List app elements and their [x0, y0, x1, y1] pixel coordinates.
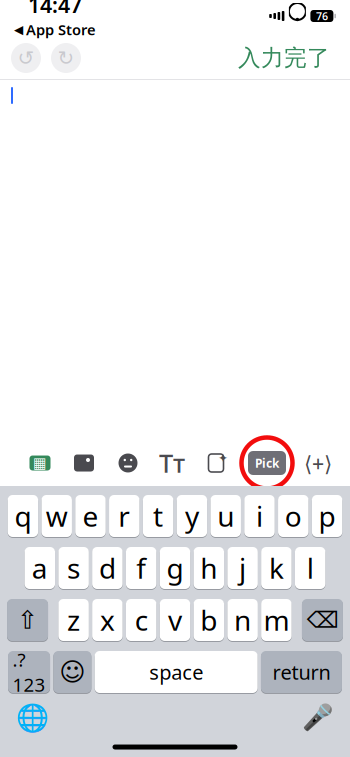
- button[interactable]: j: [227, 546, 258, 590]
- button[interactable]: Text format: [150, 443, 194, 483]
- button[interactable]: i: [244, 494, 275, 538]
- button[interactable]: 入力完了: [226, 38, 342, 78]
- staticText: 🎤: [302, 703, 334, 732]
- staticText: o: [285, 497, 302, 535]
- staticText: v: [168, 601, 182, 639]
- staticText: w: [46, 497, 68, 535]
- staticText: 76: [316, 9, 328, 23]
- staticText: 14:47: [28, 0, 82, 19]
- staticText: ✦: [218, 451, 228, 465]
- staticText: t: [153, 497, 163, 535]
- button[interactable]: b: [193, 598, 224, 642]
- staticText: 入力完了: [238, 44, 330, 72]
- staticText: 🌐: [15, 702, 48, 733]
- staticText: ▦: [33, 455, 47, 471]
- button[interactable]: m: [261, 598, 292, 642]
- staticText: u: [217, 497, 234, 535]
- button[interactable]: Keyboard: [18, 443, 62, 483]
- staticText: d: [99, 549, 116, 587]
- staticText: n: [234, 601, 251, 639]
- staticText: Pick: [255, 455, 279, 471]
- button[interactable]: z: [58, 598, 89, 642]
- staticText: ⌫: [306, 607, 338, 633]
- staticText: ⇧: [17, 606, 38, 634]
- button[interactable]: Delete: [302, 598, 343, 642]
- button[interactable]: .?123: [8, 650, 50, 694]
- staticText: ⟨+⟩: [304, 449, 332, 477]
- button[interactable]: Undo: [6, 41, 46, 75]
- button[interactable]: s: [58, 546, 89, 590]
- staticText: q: [14, 497, 31, 535]
- staticText: f: [136, 549, 146, 587]
- staticText: h: [200, 549, 217, 587]
- button[interactable]: q: [8, 494, 38, 538]
- staticText: k: [269, 549, 284, 587]
- staticText: z: [67, 601, 80, 639]
- button[interactable]: t: [143, 494, 173, 538]
- staticText: .?123: [13, 647, 46, 697]
- staticText: g: [166, 549, 183, 587]
- staticText: y: [185, 497, 199, 535]
- button[interactable]: f: [126, 546, 156, 590]
- button[interactable]: Stickers: [106, 443, 150, 483]
- button[interactable]: y: [177, 494, 207, 538]
- button[interactable]: Redo: [46, 41, 86, 75]
- button[interactable]: ◀: [14, 20, 96, 39]
- staticText: ↺: [17, 47, 34, 69]
- button[interactable]: Pick: [248, 451, 286, 475]
- staticText: s: [67, 549, 80, 587]
- button[interactable]: k: [261, 546, 292, 590]
- button[interactable]: n: [227, 598, 258, 642]
- staticText: p: [319, 497, 336, 535]
- button[interactable]: e: [75, 494, 106, 538]
- button[interactable]: h: [194, 546, 224, 590]
- staticText: e: [82, 497, 98, 535]
- button[interactable]: v: [160, 598, 190, 642]
- button[interactable]: Writing tools: [194, 443, 238, 483]
- staticText: ☺: [59, 658, 85, 686]
- staticText: i: [256, 497, 263, 535]
- button[interactable]: g: [160, 546, 190, 590]
- button[interactable]: Photos: [62, 443, 106, 483]
- button[interactable]: d: [92, 546, 123, 590]
- button[interactable]: r: [109, 494, 139, 538]
- button[interactable]: u: [210, 494, 241, 538]
- staticText: a: [32, 549, 48, 587]
- staticText: return: [272, 659, 330, 685]
- staticText: m: [263, 601, 289, 639]
- button[interactable]: space: [95, 650, 258, 694]
- staticText: b: [200, 601, 217, 639]
- button[interactable]: x: [92, 598, 123, 642]
- button[interactable]: c: [126, 598, 156, 642]
- staticText: x: [100, 601, 115, 639]
- staticText: ◀: [14, 23, 23, 36]
- button[interactable]: Next keyboard: [10, 698, 54, 736]
- staticText: c: [135, 601, 148, 639]
- staticText: j: [239, 549, 246, 587]
- button[interactable]: Dictation: [296, 698, 340, 736]
- staticText: App Store: [26, 20, 96, 39]
- button[interactable]: Shift: [7, 598, 48, 642]
- button[interactable]: w: [41, 494, 72, 538]
- staticText: r: [118, 497, 130, 535]
- staticText: ↻: [57, 47, 74, 69]
- button[interactable]: l: [295, 546, 325, 590]
- button[interactable]: return: [261, 650, 342, 694]
- button[interactable]: More apps: [296, 443, 340, 483]
- staticText: space: [149, 659, 203, 685]
- staticText: l: [307, 549, 314, 587]
- button[interactable]: p: [312, 494, 342, 538]
- staticText: Tт: [159, 446, 185, 480]
- button[interactable]: Emoji: [53, 650, 91, 694]
- button[interactable]: a: [25, 546, 55, 590]
- button[interactable]: o: [278, 494, 309, 538]
